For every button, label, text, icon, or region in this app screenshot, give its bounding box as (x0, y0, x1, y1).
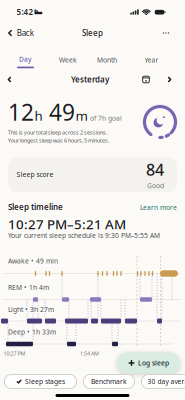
button[interactable]: Benchmark (83, 374, 135, 389)
staticText: 49 (43, 97, 75, 127)
button[interactable]: Learn more (140, 203, 177, 212)
button[interactable]: Log sleep (117, 352, 180, 373)
button[interactable]: Next day (162, 72, 176, 86)
staticText: 12 (8, 97, 34, 127)
staticText: Sleep (82, 28, 103, 38)
staticText: Day (19, 55, 32, 64)
staticText: Yesterday (71, 74, 109, 85)
staticText: Log sleep (138, 359, 169, 367)
button[interactable]: Day (17, 55, 34, 68)
staticText: Benchmark (91, 377, 127, 386)
staticText: Year (144, 56, 158, 64)
staticText: Sleep timeline (8, 202, 63, 212)
staticText: Learn more (140, 203, 177, 212)
staticText: Good (147, 181, 164, 190)
staticText: of 7h goal (88, 114, 122, 123)
button[interactable]: Previous day (2, 72, 16, 86)
button[interactable]: 30 day average (141, 374, 185, 389)
staticText: 5:42 (16, 7, 33, 17)
staticText: Awake • 49 min (8, 257, 58, 265)
button[interactable]: Week (53, 54, 83, 66)
staticText: Light • 3h 27m (8, 305, 54, 314)
button[interactable]: Sleep score (8, 157, 177, 192)
staticText: 84 (146, 159, 164, 180)
staticText: Back (17, 28, 34, 38)
staticText: h (34, 107, 42, 124)
staticText: Sleep score (16, 170, 53, 179)
button[interactable]: Month (92, 54, 122, 66)
staticText: Deep • 1h 33m (8, 328, 56, 336)
staticText: REM • 1h 4m (8, 283, 49, 292)
staticText: 1:54 AM (80, 350, 99, 357)
staticText: Week (59, 56, 77, 64)
staticText: 30 day average (147, 377, 185, 386)
staticText: Your longest sleep was 6 hours, 5 minute… (8, 137, 109, 144)
staticText: Sleep stages (25, 377, 65, 386)
staticText: 10:27 PM–5:21 AM (8, 215, 126, 233)
button[interactable]: Choose date (140, 73, 152, 85)
staticText: 10:27 PM (3, 350, 25, 357)
staticText: This is your total sleep across 2 sessio… (8, 129, 107, 136)
button[interactable]: Sleep stages (4, 374, 77, 389)
staticText: m (75, 107, 87, 124)
staticText: Month (97, 56, 117, 64)
button[interactable]: More options (158, 27, 174, 39)
button[interactable]: Back (6, 28, 34, 38)
button[interactable]: Year (136, 54, 166, 66)
staticText: Your current sleep schedule is 9:30 PM–5… (8, 231, 160, 240)
